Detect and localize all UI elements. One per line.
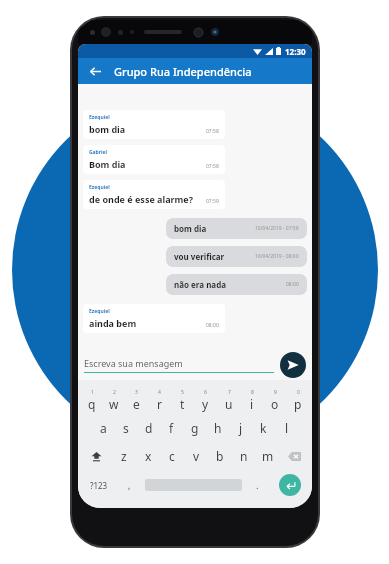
button[interactable]: Shift (81, 442, 111, 470)
staticText: Ezequiel (89, 184, 110, 191)
button[interactable]: 0 (286, 386, 309, 414)
staticText: 0 (297, 389, 300, 396)
staticText: m (262, 448, 274, 464)
staticText: ainda bem (89, 317, 137, 329)
button[interactable]: c (160, 442, 184, 470)
staticText: r (157, 396, 162, 412)
staticText: 5 (181, 389, 184, 396)
staticText: q (88, 396, 96, 412)
button[interactable]: l (275, 414, 298, 442)
staticText: Bom dia (89, 158, 126, 170)
staticText: de onde é esse alarme? (89, 193, 194, 205)
button[interactable]: Back (86, 62, 104, 80)
staticText: 08:00 (286, 281, 299, 288)
staticText: 1 (91, 389, 94, 396)
staticText: h (214, 420, 222, 436)
staticText: Ezequiel (89, 114, 110, 121)
staticText: c (169, 448, 175, 464)
staticText: 07:59 (206, 198, 219, 205)
staticText: Escreva sua mensagem (84, 357, 183, 369)
button[interactable]: Ezequiel (83, 180, 225, 209)
staticText: Ezequiel (89, 308, 110, 315)
button[interactable]: n (232, 442, 256, 470)
staticText: v (193, 448, 200, 464)
staticText: x (145, 448, 152, 464)
staticText: 07:58 (206, 163, 219, 170)
button[interactable]: k (252, 414, 275, 442)
button[interactable]: 3 (125, 386, 148, 414)
button[interactable]: a (92, 414, 114, 442)
button[interactable]: s (114, 414, 137, 442)
staticText: y (202, 396, 209, 412)
button[interactable]: h (206, 414, 229, 442)
staticText: 12:30 (285, 46, 306, 57)
staticText: a (100, 420, 107, 436)
button[interactable]: 5 (171, 386, 194, 414)
button[interactable]: g (183, 414, 206, 442)
button[interactable]: , (117, 470, 142, 500)
staticText: j (239, 420, 243, 436)
staticText: i (250, 396, 254, 412)
staticText: 10/04/2019 - 07:59 (255, 225, 299, 232)
button[interactable]: Backspace (280, 442, 309, 470)
button[interactable]: ?123 (81, 470, 117, 500)
staticText: d (145, 420, 153, 436)
staticText: 07:58 (206, 128, 219, 135)
staticText: u (225, 396, 233, 412)
staticText: 9 (274, 389, 277, 396)
button[interactable]: m (256, 442, 280, 470)
button[interactable]: Enter (279, 474, 301, 496)
staticText: Grupo Rua Independência (114, 64, 252, 79)
staticText: 3 (135, 389, 138, 396)
button[interactable]: Gabriel (83, 145, 225, 174)
staticText: z (121, 448, 127, 464)
button[interactable]: 1 (81, 386, 103, 414)
staticText: 2 (113, 389, 116, 396)
button[interactable]: f (160, 414, 183, 442)
staticText: , (128, 479, 131, 491)
staticText: . (256, 479, 259, 491)
staticText: 8 (251, 389, 254, 396)
staticText: vou verificar (174, 251, 225, 262)
button[interactable]: 8 (240, 386, 263, 414)
button[interactable]: j (229, 414, 252, 442)
staticText: 10/04/2019 - 08:00 (255, 253, 299, 260)
staticText: b (216, 448, 224, 464)
staticText: t (180, 396, 185, 412)
staticText: 6 (204, 389, 207, 396)
staticText: e (133, 396, 140, 412)
staticText: 7 (228, 389, 231, 396)
button[interactable]: Send (280, 352, 306, 378)
staticText: w (109, 396, 119, 412)
button[interactable]: x (136, 442, 160, 470)
button[interactable]: não era nada (166, 274, 307, 295)
button[interactable]: . (245, 470, 270, 500)
staticText: f (169, 420, 174, 436)
staticText: k (260, 420, 267, 436)
staticText: 4 (158, 389, 161, 396)
button[interactable]: b (208, 442, 232, 470)
button[interactable]: vou verificar (166, 246, 307, 267)
staticText: não era nada (174, 279, 226, 290)
button[interactable]: Escreva sua mensagem (84, 357, 280, 373)
staticText: g (191, 420, 199, 436)
button[interactable]: Ezequiel (83, 304, 225, 333)
staticText: 08:00 (206, 322, 219, 329)
button[interactable]: z (111, 442, 136, 470)
button[interactable]: 9 (263, 386, 286, 414)
staticText: o (271, 396, 279, 412)
button[interactable]: Ezequiel (83, 110, 225, 139)
button[interactable]: d (137, 414, 160, 442)
staticText: bom dia (89, 123, 126, 135)
staticText: s (123, 420, 129, 436)
button[interactable]: v (184, 442, 208, 470)
staticText: l (285, 420, 289, 436)
button[interactable]: 4 (148, 386, 171, 414)
staticText: bom dia (174, 223, 207, 234)
button[interactable]: 7 (217, 386, 240, 414)
staticText: p (294, 396, 302, 412)
button[interactable]: 6 (194, 386, 217, 414)
button[interactable]: 2 (103, 386, 125, 414)
button[interactable]: bom dia (166, 218, 307, 239)
